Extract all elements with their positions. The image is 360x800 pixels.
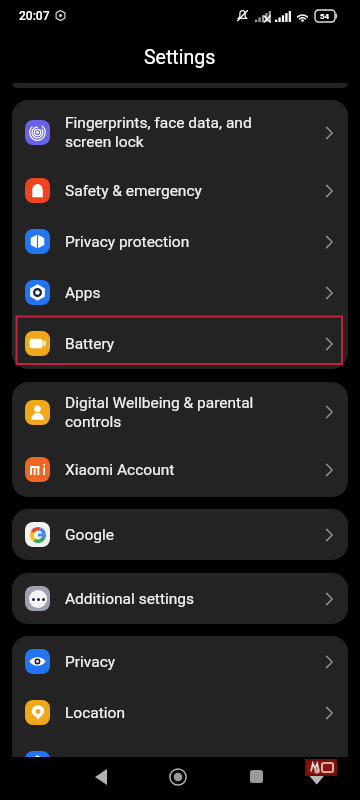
button[interactable]: Battery (12, 318, 348, 369)
button[interactable]: Location (12, 687, 348, 738)
staticText: 20:07 (19, 9, 50, 23)
staticText: Location (65, 704, 317, 722)
button[interactable]: Fingerprints, face data, and screen lock (12, 100, 348, 165)
staticText: 54 (320, 12, 330, 21)
staticText: Apps (65, 284, 317, 302)
staticText: Battery (65, 335, 317, 353)
button[interactable]: Safety & emergency (12, 165, 348, 216)
button[interactable]: Back (83, 759, 118, 794)
button[interactable]: Additional settings (12, 573, 348, 624)
button[interactable]: Home (160, 759, 195, 794)
button[interactable]: Privacy (12, 636, 348, 687)
staticText: Privacy protection (65, 233, 317, 251)
staticText: Safety & emergency (65, 182, 317, 200)
staticText: Fingerprints, face data, and screen lock (65, 114, 317, 151)
staticText: Settings (144, 46, 216, 69)
button[interactable]: More (12, 738, 348, 757)
staticText: Digital Wellbeing & parental controls (65, 394, 317, 431)
staticText: Additional settings (65, 590, 317, 608)
button[interactable]: Privacy protection (12, 216, 348, 267)
staticText: Xiaomi Account (65, 461, 317, 479)
button[interactable]: Digital Wellbeing & parental controls (12, 382, 348, 442)
button[interactable]: Google (12, 509, 348, 560)
staticText: Privacy (65, 653, 317, 671)
button[interactable]: Apps (12, 267, 348, 318)
button[interactable]: Recents (239, 759, 274, 794)
button[interactable]: Xiaomi Account (12, 442, 348, 497)
staticText: Google (65, 526, 317, 544)
